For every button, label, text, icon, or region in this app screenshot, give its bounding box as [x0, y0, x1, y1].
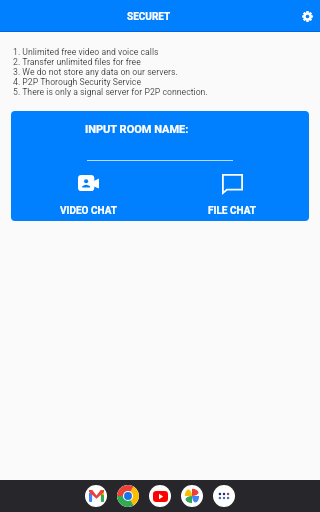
button[interactable]: VIDEO CHAT [28, 175, 148, 217]
staticText: SECURET [127, 11, 171, 23]
staticText: 2. Transfer unlimited files for free [13, 57, 141, 67]
staticText: 1. Unlimited free video and voice calls [13, 47, 159, 57]
button[interactable]: YouTube [149, 485, 171, 507]
button[interactable]: Room name input [87, 141, 233, 161]
staticText: 5. There is only a signal server for P2P… [13, 87, 208, 97]
staticText: 3. We do not store any data on our serve… [13, 67, 178, 77]
staticText: INPUT ROOM NAME: [85, 123, 189, 136]
staticText: 4. P2P Thorough Security Service [13, 77, 142, 87]
button[interactable]: FILE CHAT [172, 174, 292, 217]
button[interactable]: Chrome [117, 485, 139, 507]
button[interactable]: Settings [296, 5, 318, 27]
button[interactable]: Photos [181, 485, 203, 507]
button[interactable]: All apps [213, 485, 235, 507]
staticText: FILE CHAT [208, 205, 256, 217]
staticText: VIDEO CHAT [60, 205, 117, 217]
button[interactable]: Gmail [85, 485, 107, 507]
